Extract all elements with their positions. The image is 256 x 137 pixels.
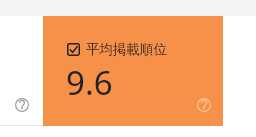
- button[interactable]: Help about average position: [197, 98, 211, 112]
- button[interactable]: 平均掲載順位: [43, 16, 223, 126]
- staticText: 9.6: [66, 60, 113, 105]
- button[interactable]: Help about this metric: [15, 98, 29, 112]
- button[interactable]: 平均掲載順位: [67, 41, 167, 58]
- staticText: 平均掲載順位: [86, 41, 167, 58]
